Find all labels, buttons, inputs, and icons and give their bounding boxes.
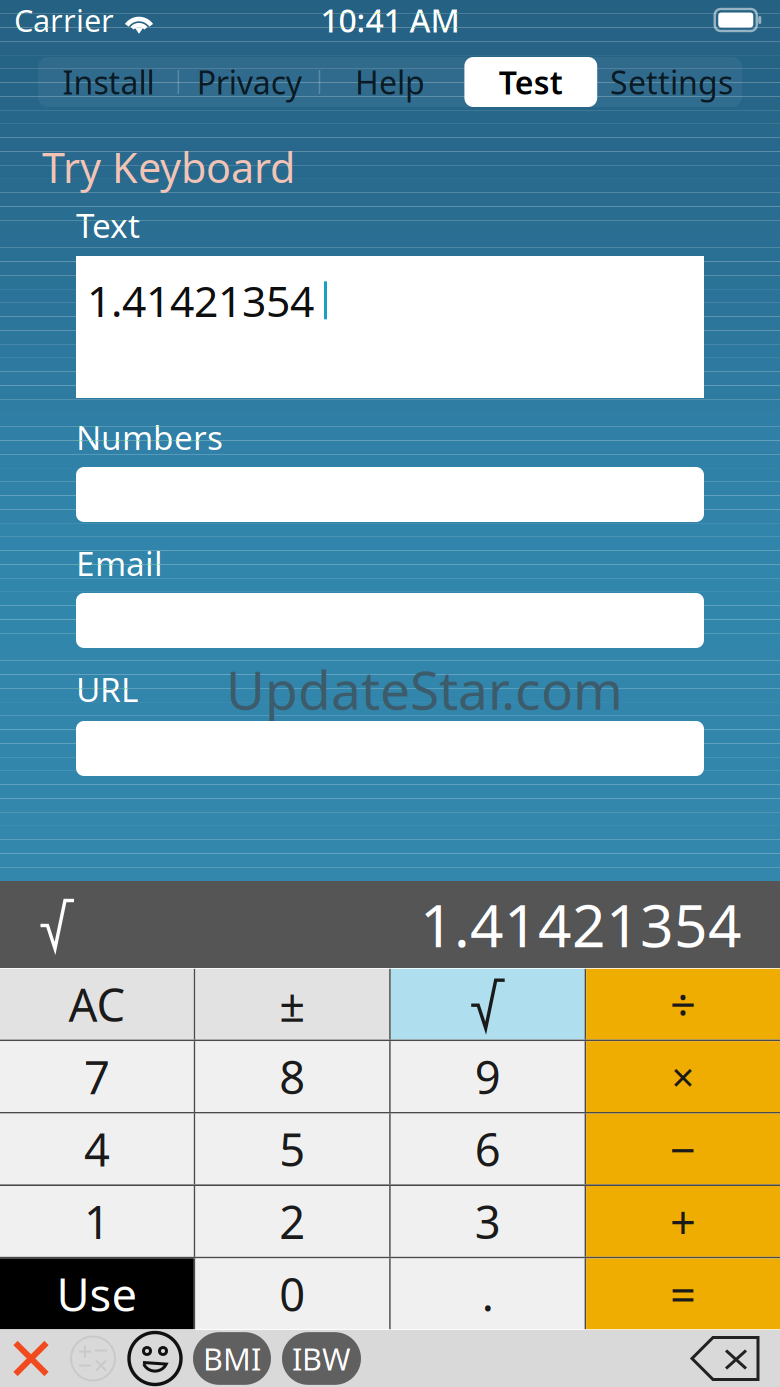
- staticText: 4: [84, 1119, 110, 1179]
- staticText: Use: [56, 1264, 137, 1324]
- staticText: 1.41421354: [87, 272, 314, 329]
- staticText: AC: [68, 974, 125, 1034]
- staticText: BMI: [203, 1338, 261, 1379]
- button[interactable]: ÷: [586, 969, 780, 1040]
- button[interactable]: ±: [195, 969, 389, 1040]
- staticText: ÷: [670, 974, 696, 1034]
- staticText: Privacy: [197, 61, 302, 103]
- staticText: IBW: [292, 1338, 351, 1379]
- button[interactable]: 5: [195, 1114, 389, 1184]
- staticText: Text: [76, 203, 140, 247]
- staticText: Email: [76, 541, 163, 585]
- staticText: ×: [672, 1050, 695, 1103]
- button[interactable]: 8: [195, 1041, 389, 1112]
- staticText: Settings: [610, 61, 733, 103]
- staticText: 10:41 AM: [320, 0, 459, 41]
- staticText: 6: [475, 1119, 501, 1179]
- staticText: 5: [279, 1119, 305, 1179]
- staticText: +: [670, 1191, 696, 1251]
- button[interactable]: Emoji: [124, 1330, 186, 1387]
- button[interactable]: 4: [0, 1114, 194, 1184]
- staticText: 3: [475, 1191, 501, 1251]
- button[interactable]: Privacy: [179, 57, 320, 107]
- button[interactable]: AC: [0, 969, 194, 1040]
- button[interactable]: Test: [460, 57, 601, 107]
- button[interactable]: +: [586, 1186, 780, 1257]
- staticText: Test: [499, 61, 563, 103]
- button[interactable]: Delete: [682, 1330, 768, 1387]
- staticText: 2: [279, 1191, 305, 1251]
- button[interactable]: Use: [0, 1258, 194, 1329]
- button[interactable]: 3: [391, 1186, 585, 1257]
- button[interactable]: ×: [586, 1041, 780, 1112]
- button[interactable]: Close: [0, 1330, 62, 1387]
- button[interactable]: 0: [195, 1258, 389, 1329]
- button[interactable]: Help: [320, 57, 460, 107]
- staticText: UpdateStar.com: [226, 654, 623, 724]
- button[interactable]: [391, 969, 585, 1040]
- button[interactable]: Install: [38, 57, 179, 107]
- button[interactable]: =: [586, 1258, 780, 1329]
- button[interactable]: 7: [0, 1041, 194, 1112]
- button[interactable]: 2: [195, 1186, 389, 1257]
- button[interactable]: Settings: [601, 57, 742, 107]
- staticText: 1.41421354: [420, 885, 742, 963]
- staticText: Help: [355, 61, 425, 103]
- staticText: 7: [84, 1046, 110, 1107]
- staticText: −: [670, 1119, 696, 1179]
- staticText: 8: [279, 1046, 305, 1107]
- staticText: Try Keyboard: [42, 140, 295, 194]
- staticText: 9: [475, 1046, 501, 1107]
- button[interactable]: Calculator: [62, 1330, 124, 1387]
- button[interactable]: IBW: [282, 1330, 361, 1387]
- staticText: =: [670, 1264, 696, 1324]
- staticText: ±: [279, 974, 305, 1034]
- staticText: Numbers: [76, 415, 223, 459]
- staticText: Carrier: [14, 0, 114, 40]
- staticText: Install: [62, 61, 154, 103]
- staticText: .: [482, 1264, 494, 1324]
- staticText: URL: [76, 667, 138, 711]
- staticText: 0: [279, 1264, 305, 1324]
- button[interactable]: −: [586, 1114, 780, 1184]
- button[interactable]: .: [391, 1258, 585, 1329]
- button[interactable]: 9: [391, 1041, 585, 1112]
- button[interactable]: BMI: [193, 1330, 271, 1387]
- staticText: 1: [84, 1191, 110, 1251]
- button[interactable]: 1: [0, 1186, 194, 1257]
- button[interactable]: 6: [391, 1114, 585, 1184]
